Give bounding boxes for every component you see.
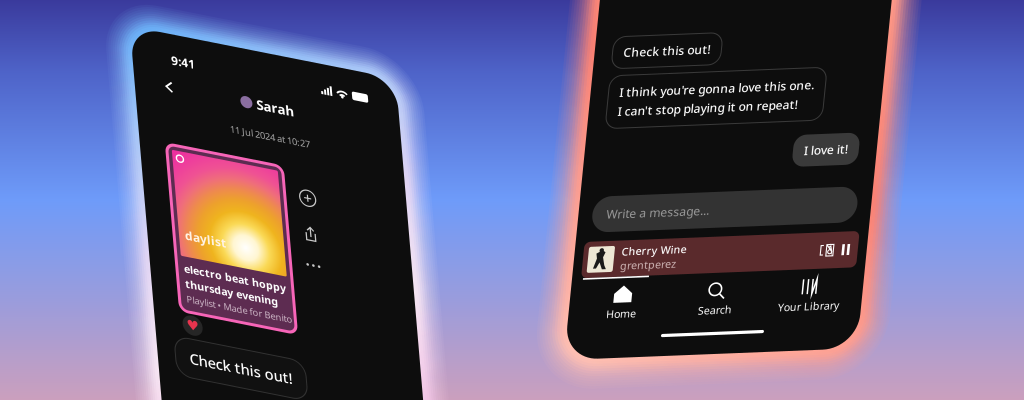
staticText: electro beat hoppy: [162, 249, 264, 263]
button[interactable]: Share: [283, 185, 304, 206]
staticText: 11 Jul 2024 at 10:27: [221, 99, 301, 111]
button[interactable]: More: [283, 222, 305, 233]
staticText: Search: [750, 310, 784, 324]
staticText: thursday evening: [162, 264, 255, 279]
staticText: Playlist • Made for Benito: [162, 281, 268, 293]
staticText: I think you're gonna love this one.: [649, 87, 844, 103]
button[interactable]: Back: [152, 64, 174, 86]
staticText: daylist: [166, 214, 207, 230]
button[interactable]: Home: [626, 289, 720, 324]
staticText: Write a message...: [648, 209, 751, 224]
button[interactable]: Your Library: [814, 289, 907, 324]
button[interactable]: Search: [720, 289, 814, 324]
staticText: I love it!: [840, 153, 884, 168]
staticText: Cherry Wine: [667, 247, 732, 262]
staticText: Your Library: [830, 310, 891, 324]
button[interactable]: Write a message...: [634, 199, 899, 234]
staticText: Check this out!: [160, 337, 263, 356]
button[interactable]: Cherry Wine: [629, 243, 904, 280]
staticText: grentperez: [667, 262, 723, 276]
staticText: I can't stop playing it on repeat!: [649, 106, 829, 122]
staticText: Check this out!: [649, 47, 736, 63]
